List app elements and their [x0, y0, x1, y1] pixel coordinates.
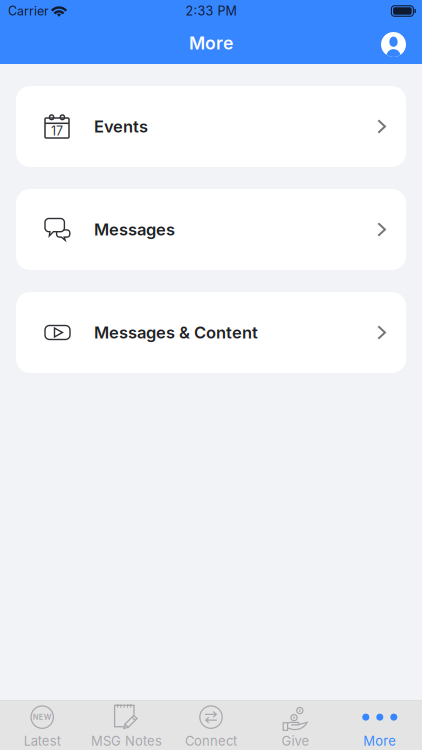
staticText: Messages: [94, 219, 175, 239]
staticText: More: [189, 32, 233, 54]
staticText: MSG Notes: [91, 733, 162, 749]
staticText: 2:33 PM: [185, 3, 236, 19]
staticText: 17: [51, 123, 63, 138]
button[interactable]: Give: [253, 698, 338, 750]
staticText: Latest: [24, 733, 61, 749]
staticText: Connect: [185, 733, 237, 749]
staticText: Carrier: [8, 3, 49, 18]
button[interactable]: More: [338, 698, 422, 750]
button[interactable]: MSG Notes: [84, 698, 169, 750]
button[interactable]: Messages & Content: [16, 292, 406, 373]
button[interactable]: 17: [16, 86, 406, 167]
staticText: NEW: [33, 713, 52, 722]
staticText: More: [363, 733, 396, 749]
button[interactable]: Connect: [169, 698, 253, 750]
staticText: Messages & Content: [94, 322, 258, 342]
staticText: Events: [94, 116, 148, 136]
button[interactable]: Profile: [381, 22, 422, 64]
staticText: Give: [281, 733, 309, 749]
button[interactable]: Messages: [16, 189, 406, 270]
button[interactable]: NEW: [0, 698, 84, 750]
